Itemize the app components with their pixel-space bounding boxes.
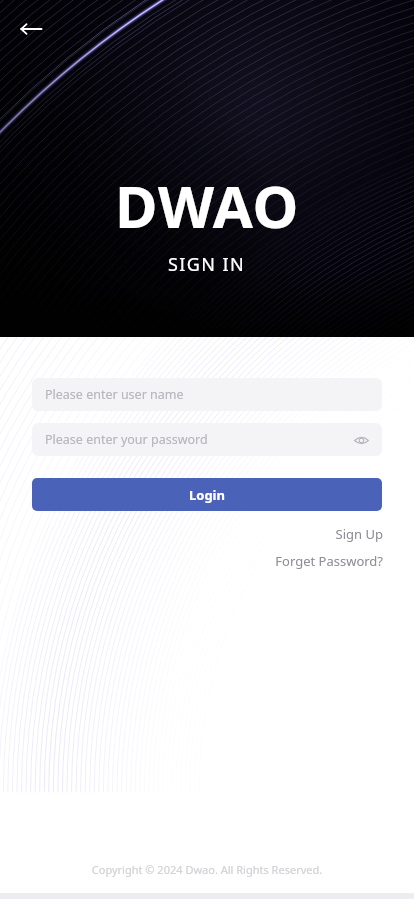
staticText: Forget Password?: [275, 552, 383, 570]
staticText: Please enter user name: [45, 386, 184, 403]
button[interactable]: Login: [32, 478, 382, 511]
button[interactable]: Sign Up: [335, 525, 383, 543]
staticText: Login: [189, 486, 225, 504]
button[interactable]: Forget Password?: [275, 552, 383, 570]
staticText: Copyright © 2024 Dwao. All Rights Reserv…: [0, 862, 414, 877]
button[interactable]: Please enter your password: [32, 423, 382, 456]
staticText: Sign Up: [335, 525, 383, 543]
staticText: SIGN IN: [168, 252, 246, 277]
button[interactable]: Back: [14, 12, 48, 46]
button[interactable]: Show password: [348, 427, 374, 453]
staticText: Please enter your password: [45, 431, 208, 448]
button[interactable]: Please enter user name: [32, 378, 382, 411]
staticText: DWAO: [115, 166, 300, 245]
